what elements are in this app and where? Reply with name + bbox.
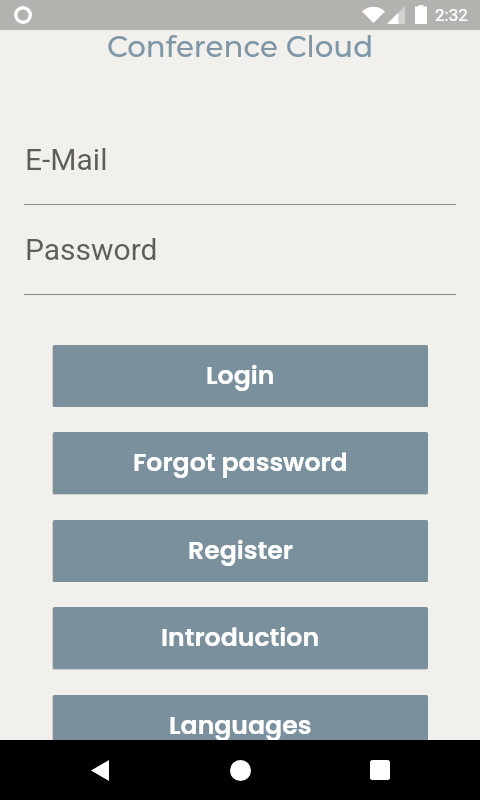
staticText: 2:32 <box>435 5 468 25</box>
button[interactable]: Register <box>53 520 428 582</box>
button[interactable]: Password <box>24 229 456 295</box>
staticText: Login <box>206 358 275 393</box>
staticText: Register <box>188 533 293 568</box>
staticText: Forgot password <box>133 445 348 480</box>
button[interactable]: Recent apps <box>360 740 400 800</box>
button[interactable]: Introduction <box>53 607 428 669</box>
button[interactable]: Forgot password <box>53 432 428 494</box>
staticText: E-Mail <box>25 142 108 177</box>
button[interactable]: Languages <box>53 695 428 757</box>
staticText: Conference Cloud <box>107 29 374 65</box>
staticText: Languages <box>169 708 312 743</box>
button[interactable]: Back <box>80 740 120 800</box>
button[interactable]: Home <box>220 740 260 800</box>
button[interactable]: Login <box>53 345 428 407</box>
button[interactable]: E-Mail <box>24 139 456 205</box>
staticText: Password <box>25 232 158 267</box>
staticText: Introduction <box>161 620 320 655</box>
